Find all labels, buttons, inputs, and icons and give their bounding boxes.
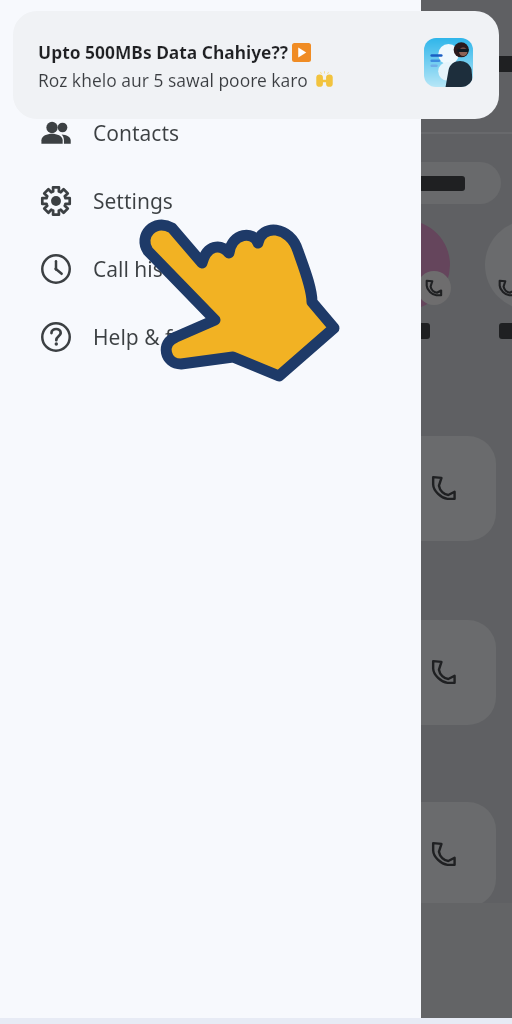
button[interactable]: Contacts — [0, 99, 421, 167]
button[interactable]: Help & feedback — [0, 303, 421, 371]
staticText: Roz khelo aur 5 sawal poore karo — [38, 68, 308, 92]
staticText: Contacts — [93, 119, 180, 148]
staticText: Help & feedback — [93, 323, 255, 352]
staticText: Settings — [93, 187, 173, 216]
button[interactable]: Call history — [0, 235, 421, 303]
button[interactable]: Settings — [0, 167, 421, 235]
button[interactable]: Upto 500MBs Data Chahiye?? — [13, 11, 499, 119]
staticText: Upto 500MBs Data Chahiye?? — [38, 40, 289, 64]
staticText: Call history — [93, 255, 203, 284]
